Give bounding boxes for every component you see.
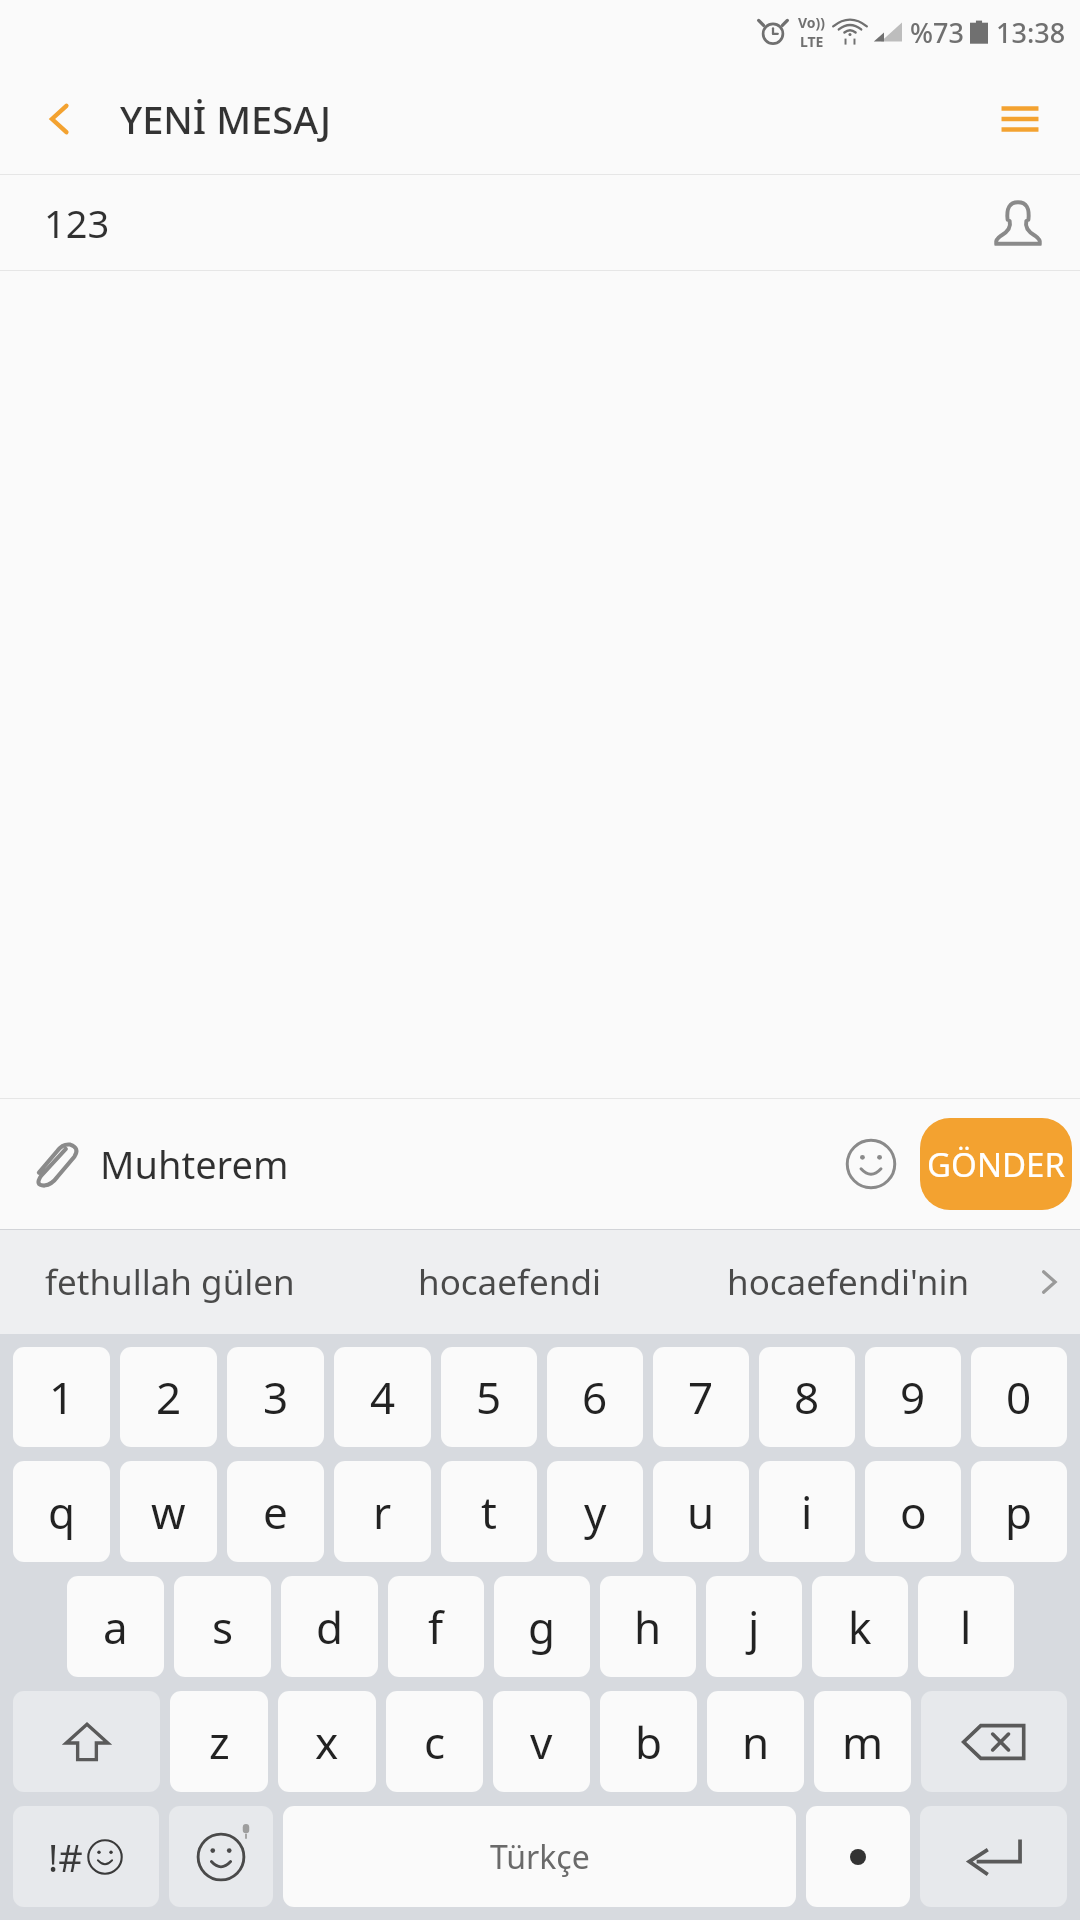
staticText: hocaefendi'nin <box>727 1258 970 1306</box>
staticText: a <box>103 1597 128 1657</box>
button[interactable]: 9 <box>865 1347 961 1447</box>
staticText: f <box>428 1597 444 1657</box>
staticText: z <box>209 1712 230 1772</box>
button[interactable]: o <box>865 1461 961 1562</box>
button[interactable]: 4 <box>334 1347 431 1447</box>
button[interactable]: t <box>441 1461 537 1562</box>
button[interactable]: n <box>707 1691 804 1792</box>
staticText: b <box>635 1712 663 1772</box>
staticText: Muhterem <box>100 1138 289 1190</box>
button[interactable]: Symbols <box>13 1806 159 1907</box>
staticText: x <box>315 1712 339 1772</box>
staticText: q <box>48 1482 76 1542</box>
staticText: v <box>530 1712 553 1772</box>
staticText: c <box>424 1712 446 1772</box>
button[interactable]: y <box>547 1461 643 1562</box>
staticText: Vo)) <box>798 13 826 32</box>
button[interactable]: Enter <box>920 1806 1067 1907</box>
staticText: g <box>528 1597 556 1657</box>
button[interactable]: f <box>388 1576 484 1677</box>
button[interactable]: 1 <box>13 1347 110 1447</box>
button[interactable]: l <box>918 1576 1014 1677</box>
button[interactable]: 6 <box>547 1347 643 1447</box>
staticText: 7 <box>688 1367 714 1427</box>
button[interactable]: Emoji <box>828 1121 914 1207</box>
button[interactable]: h <box>600 1576 696 1677</box>
button[interactable]: v <box>493 1691 590 1792</box>
staticText: h <box>634 1597 662 1657</box>
button[interactable]: 8 <box>759 1347 855 1447</box>
staticText: o <box>900 1482 927 1542</box>
button[interactable]: a <box>67 1576 164 1677</box>
button[interactable]: p <box>971 1461 1067 1562</box>
staticText: k <box>848 1597 872 1657</box>
button[interactable]: Emoji and voice input <box>169 1806 273 1907</box>
staticText: n <box>742 1712 770 1772</box>
button[interactable]: hocaefendi'nin <box>679 1229 1018 1334</box>
staticText: w <box>151 1482 186 1542</box>
button[interactable]: r <box>334 1461 431 1562</box>
button[interactable]: m <box>814 1691 911 1792</box>
button[interactable]: w <box>120 1461 217 1562</box>
button[interactable]: Backspace <box>921 1691 1067 1792</box>
button[interactable]: g <box>494 1576 590 1677</box>
button[interactable]: Muhterem <box>94 1099 828 1229</box>
button[interactable]: 7 <box>653 1347 749 1447</box>
staticText: m <box>842 1712 884 1772</box>
staticText: LTE <box>800 32 824 51</box>
button[interactable]: Back <box>0 64 120 174</box>
button[interactable]: z <box>170 1691 268 1792</box>
button[interactable]: i <box>759 1461 855 1562</box>
staticText: 9 <box>900 1367 926 1427</box>
staticText: YENİ MESAJ <box>120 93 331 145</box>
button[interactable]: Attach <box>14 1124 94 1204</box>
staticText: %73 <box>910 14 964 51</box>
staticText: s <box>212 1597 234 1657</box>
button[interactable]: j <box>706 1576 802 1677</box>
staticText: fethullah gülen <box>45 1258 295 1306</box>
staticText: 4 <box>370 1367 396 1427</box>
button[interactable]: 0 <box>971 1347 1067 1447</box>
staticText: Türkçe <box>490 1835 590 1879</box>
button[interactable]: k <box>812 1576 908 1677</box>
staticText: 6 <box>582 1367 608 1427</box>
button[interactable]: u <box>653 1461 749 1562</box>
staticText: 1 <box>49 1367 75 1427</box>
button[interactable]: Menu <box>960 64 1080 174</box>
button[interactable]: fethullah gülen <box>0 1229 340 1334</box>
button[interactable]: Shift <box>13 1691 160 1792</box>
button[interactable]: 5 <box>441 1347 537 1447</box>
staticText: hocaefendi <box>418 1258 601 1306</box>
button[interactable]: q <box>13 1461 110 1562</box>
button[interactable]: More suggestions <box>1018 1229 1080 1334</box>
staticText: e <box>263 1482 288 1542</box>
button[interactable]: 2 <box>120 1347 217 1447</box>
staticText: 8 <box>794 1367 820 1427</box>
staticText: l <box>960 1597 972 1657</box>
button[interactable]: Period <box>806 1806 910 1907</box>
button[interactable]: hocaefendi <box>340 1229 679 1334</box>
staticText: !# <box>48 1831 83 1883</box>
button[interactable]: d <box>281 1576 378 1677</box>
staticText: u <box>687 1482 715 1542</box>
staticText: j <box>748 1597 760 1657</box>
staticText: y <box>584 1482 607 1542</box>
button[interactable]: GÖNDER <box>920 1118 1072 1210</box>
button[interactable]: e <box>227 1461 324 1562</box>
staticText: r <box>373 1482 392 1542</box>
staticText: t <box>481 1482 497 1542</box>
button[interactable]: 123 <box>0 175 1080 270</box>
button[interactable]: 3 <box>227 1347 324 1447</box>
staticText: i <box>801 1482 813 1542</box>
button[interactable]: Add contact <box>978 183 1058 263</box>
staticText: GÖNDER <box>927 1142 1065 1187</box>
staticText: d <box>316 1597 344 1657</box>
button[interactable]: c <box>386 1691 483 1792</box>
staticText: 13:38 <box>996 14 1066 51</box>
button[interactable]: s <box>174 1576 271 1677</box>
staticText: p <box>1005 1482 1033 1542</box>
button[interactable]: b <box>600 1691 697 1792</box>
staticText: 3 <box>263 1367 289 1427</box>
button[interactable]: x <box>278 1691 376 1792</box>
button[interactable]: Türkçe <box>283 1806 796 1907</box>
